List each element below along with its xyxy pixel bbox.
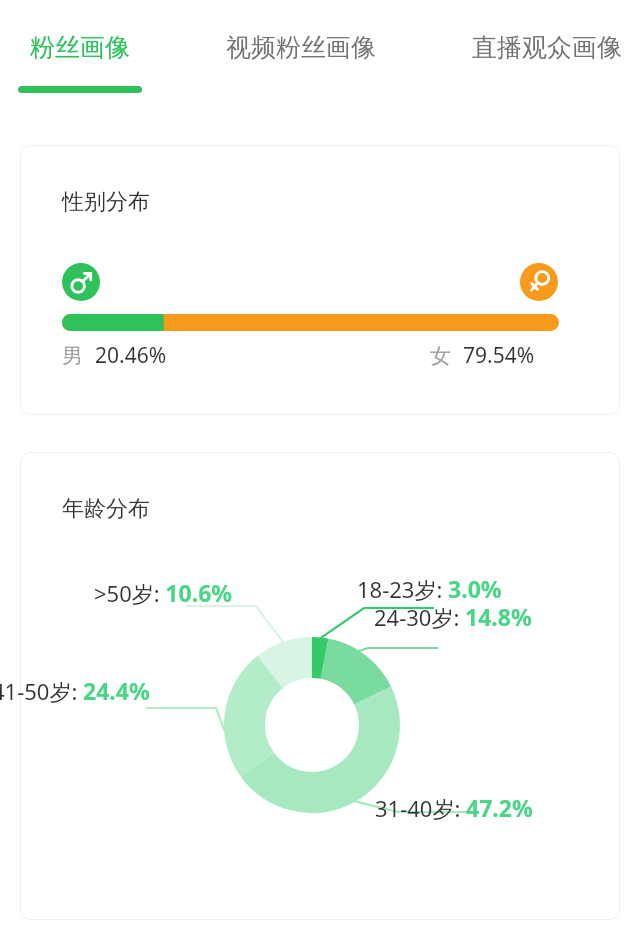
button[interactable]: 18-23岁: 3.0%: [357, 573, 502, 604]
staticText: 31-40岁: 47.2%: [375, 792, 533, 823]
staticText: 视频粉丝画像: [226, 32, 376, 63]
button[interactable]: Male: [62, 263, 100, 301]
button[interactable]: 视频粉丝画像: [212, 0, 390, 100]
staticText: >50岁: 10.6%: [94, 577, 233, 608]
staticText: 直播观众画像: [472, 32, 622, 63]
button[interactable]: >50岁: 10.6%: [94, 577, 233, 608]
staticText: 79.54%: [463, 341, 535, 370]
staticText: 性别分布: [62, 188, 150, 216]
button[interactable]: 性别分布: [20, 145, 620, 415]
staticText: 18-23岁: 3.0%: [357, 573, 502, 604]
staticText: 男: [62, 343, 83, 369]
button[interactable]: 直播观众画像: [458, 0, 636, 100]
staticText: 年龄分布: [62, 495, 150, 523]
button[interactable]: 24-30岁: 14.8%: [374, 601, 532, 632]
button[interactable]: 31-40岁: 47.2%: [375, 792, 533, 823]
staticText: 20.46%: [95, 341, 167, 370]
staticText: 41-50岁: 24.4%: [0, 675, 150, 706]
button[interactable]: Female: [520, 263, 558, 301]
staticText: 女: [430, 343, 451, 369]
button[interactable]: 年龄分布: [20, 452, 620, 920]
staticText: 24-30岁: 14.8%: [374, 601, 532, 632]
button[interactable]: 粉丝画像: [18, 0, 142, 100]
staticText: 粉丝画像: [30, 32, 130, 63]
button[interactable]: 41-50岁: 24.4%: [0, 675, 150, 706]
